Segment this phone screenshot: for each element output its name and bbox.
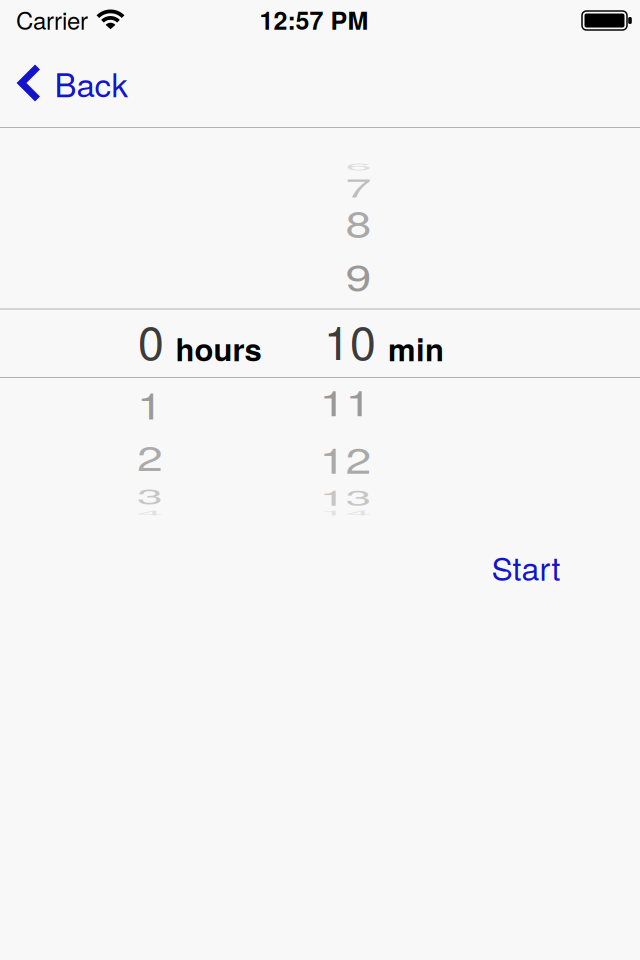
staticText: 13 xyxy=(319,463,371,530)
staticText: 6 xyxy=(345,133,371,199)
staticText: Carrier xyxy=(16,2,88,37)
staticText: Back xyxy=(54,59,128,107)
staticText: Start xyxy=(491,544,560,590)
staticText: min xyxy=(388,326,444,371)
staticText: 1 xyxy=(137,370,163,436)
staticText: 3 xyxy=(137,462,163,528)
button[interactable]: Start xyxy=(491,544,560,590)
staticText: 7 xyxy=(345,153,371,219)
staticText: 2 xyxy=(137,423,163,489)
staticText: 9 xyxy=(345,242,371,308)
staticText: 14 xyxy=(319,479,371,546)
staticText: 8 xyxy=(345,188,371,255)
staticText: 11 xyxy=(319,367,371,434)
staticText: 0 xyxy=(138,307,164,373)
staticText: 12 xyxy=(319,425,371,491)
staticText: 4 xyxy=(137,479,163,546)
staticText: 10 xyxy=(324,307,376,373)
staticText: 12:57 PM xyxy=(259,2,368,37)
button[interactable]: Back xyxy=(17,59,128,107)
staticText: hours xyxy=(175,326,261,371)
